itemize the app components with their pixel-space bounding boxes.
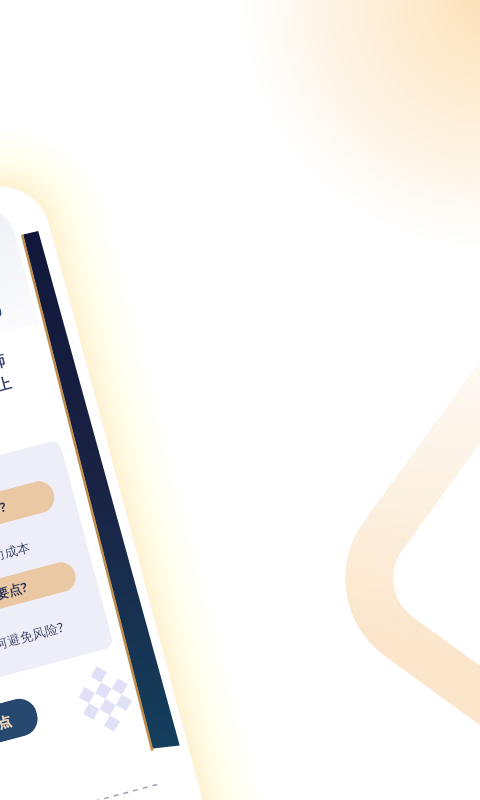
staticText: 专业税务师 — [0, 352, 8, 389]
staticText: 减少人力成本 — [0, 539, 32, 574]
staticText: 能增加多少? — [0, 497, 9, 533]
button[interactable]: 有哪些要点? — [0, 559, 79, 632]
button[interactable]: 税务要点 — [0, 695, 42, 759]
staticText: 税务要点 — [0, 712, 13, 741]
button[interactable] — [0, 257, 3, 328]
button[interactable]: 能增加多少? — [0, 478, 58, 552]
staticText: 有哪些要点? — [0, 577, 30, 613]
button[interactable]: 能增加多少? — [0, 439, 114, 713]
staticText: 线上报名上 — [0, 374, 14, 412]
staticText: 如何避免风险? — [0, 618, 66, 657]
